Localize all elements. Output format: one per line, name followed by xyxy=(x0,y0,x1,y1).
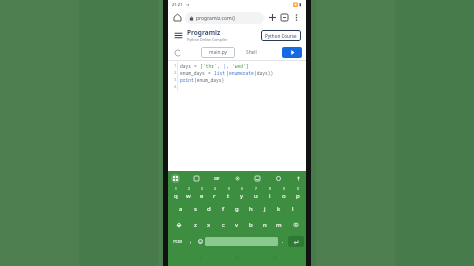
button[interactable]: Theme xyxy=(172,47,183,58)
staticText: enum_days xyxy=(180,70,208,76)
staticText: e xyxy=(200,192,204,200)
staticText: l xyxy=(292,205,294,213)
button[interactable]: Menu xyxy=(173,30,184,41)
staticText: 'thr' xyxy=(203,63,217,69)
button[interactable]: GIF xyxy=(212,174,221,183)
button[interactable]: 6 xyxy=(235,185,249,201)
staticText: f xyxy=(222,205,225,213)
staticText: Shell xyxy=(246,49,257,56)
staticText: x xyxy=(207,221,211,229)
button[interactable]: f xyxy=(216,201,230,217)
staticText: r xyxy=(213,192,216,200)
staticText: g xyxy=(235,205,239,213)
staticText: = xyxy=(194,63,200,69)
button[interactable]: a xyxy=(174,201,188,217)
button[interactable]: programiz.com/j xyxy=(185,12,264,24)
button[interactable]: n xyxy=(258,217,272,233)
staticText: 6 xyxy=(241,187,243,191)
staticText: days xyxy=(180,63,194,69)
button[interactable]: ?123 xyxy=(170,233,186,250)
button[interactable]: 2 xyxy=(182,185,195,201)
button[interactable]: Voice input xyxy=(294,174,303,183)
staticText: | xyxy=(223,63,226,69)
button[interactable]: d xyxy=(202,201,216,217)
button[interactable]: Keyboard settings xyxy=(171,174,180,183)
button[interactable]: 0 xyxy=(291,185,305,201)
staticText: 8 xyxy=(269,187,271,191)
staticText: = xyxy=(208,70,214,76)
staticText: 5 xyxy=(228,187,230,191)
button[interactable]: 5 xyxy=(221,185,235,201)
staticText: n xyxy=(263,221,267,229)
button[interactable]: x xyxy=(202,217,216,233)
button[interactable]: m xyxy=(272,217,286,233)
staticText: 3 xyxy=(174,77,177,83)
button[interactable]: k xyxy=(272,201,286,217)
button[interactable]: h xyxy=(244,201,258,217)
button[interactable]: Stickers xyxy=(274,174,283,183)
staticText: s xyxy=(194,205,197,213)
button[interactable]: Enter xyxy=(288,236,304,247)
staticText: o xyxy=(282,192,286,200)
staticText: 2 xyxy=(174,70,177,76)
staticText: d xyxy=(207,205,211,213)
staticText: i xyxy=(269,192,271,200)
staticText: a xyxy=(179,205,183,213)
button[interactable]: main.py xyxy=(201,47,235,58)
button[interactable]: Backspace xyxy=(286,217,305,233)
button[interactable]: 4 xyxy=(208,185,221,201)
staticText: Python Course xyxy=(265,33,297,39)
button[interactable]: 1 xyxy=(169,185,182,201)
button[interactable]: Emoji xyxy=(195,233,205,250)
staticText: [ xyxy=(200,63,203,69)
button[interactable]: s xyxy=(188,201,202,217)
staticText: , xyxy=(190,238,192,245)
button[interactable]: Home xyxy=(172,12,183,23)
button[interactable]: New tab xyxy=(267,12,278,23)
staticText: w xyxy=(186,192,191,200)
button[interactable]: Shift xyxy=(169,217,188,233)
button[interactable]: 8 xyxy=(263,185,277,201)
button[interactable]: v xyxy=(230,217,244,233)
button[interactable]: 7 xyxy=(249,185,263,201)
button[interactable]: l xyxy=(286,201,300,217)
staticText: ( xyxy=(226,70,229,76)
button[interactable]: Run xyxy=(282,47,302,58)
button[interactable]: Shell xyxy=(239,47,263,58)
button[interactable]: Translate xyxy=(253,174,262,183)
staticText: programiz.com/j xyxy=(196,15,235,22)
staticText: , xyxy=(226,63,232,69)
button[interactable]: j xyxy=(258,201,272,217)
staticText: u xyxy=(254,192,258,200)
staticText: ⏹ ▮ xyxy=(293,2,302,7)
button[interactable]: Settings xyxy=(233,174,242,183)
button[interactable]: z xyxy=(188,217,202,233)
button[interactable]: b xyxy=(244,217,258,233)
staticText: t xyxy=(227,192,230,200)
button[interactable]: g xyxy=(230,201,244,217)
button[interactable]: , xyxy=(186,233,195,250)
staticText: z xyxy=(194,221,197,229)
button[interactable]: 3 xyxy=(195,185,208,201)
staticText: 3 xyxy=(201,187,203,191)
button[interactable]: . xyxy=(278,233,288,250)
staticText: Python Online Compiler xyxy=(187,37,228,42)
button[interactable]: Switch tabs xyxy=(279,12,290,23)
button[interactable]: Clipboard xyxy=(192,174,201,183)
staticText: ◦⦁ xyxy=(185,2,190,7)
staticText: y xyxy=(240,192,244,200)
staticText: enumerate xyxy=(229,70,254,76)
button[interactable]: Python Course xyxy=(261,30,301,41)
staticText: main.py xyxy=(209,49,227,56)
button[interactable]: More options xyxy=(291,12,302,23)
staticText: 2 xyxy=(188,187,190,191)
staticText: list xyxy=(214,70,226,76)
staticText: , xyxy=(217,63,223,69)
staticText: b xyxy=(249,221,253,229)
button[interactable]: c xyxy=(216,217,230,233)
button[interactable]: 9 xyxy=(277,185,291,201)
